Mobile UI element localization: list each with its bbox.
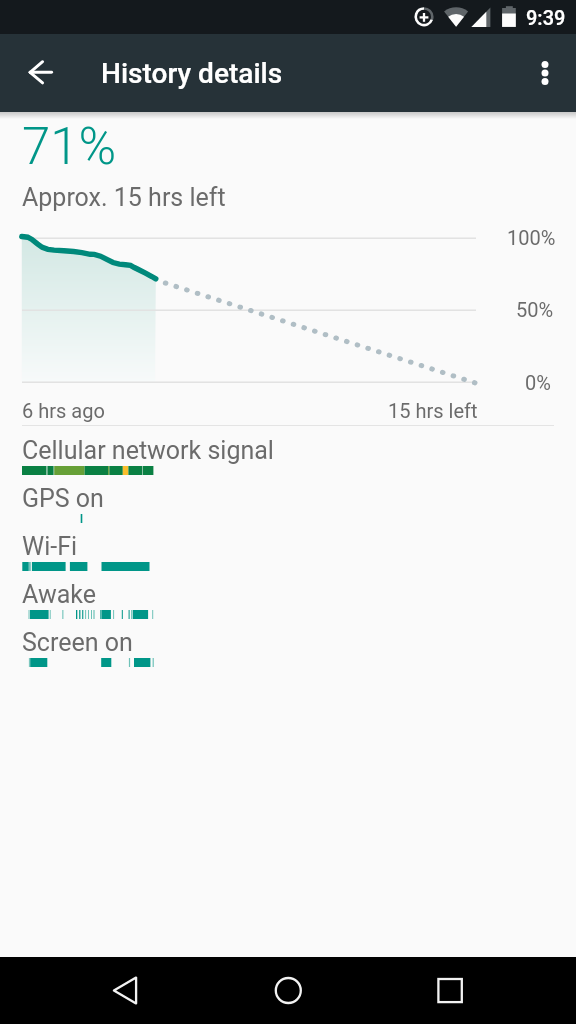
staticText: Awake: [22, 580, 96, 609]
staticText: 100%: [507, 226, 556, 249]
staticText: Cellular network signal: [22, 436, 274, 465]
button[interactable]: Screen on: [0, 628, 576, 676]
button[interactable]: Cellular network signal: [0, 436, 576, 484]
staticText: Approx. 15 hrs left: [22, 183, 226, 212]
staticText: Screen on: [22, 628, 133, 657]
button[interactable]: More options: [523, 51, 567, 95]
staticText: 50%: [516, 298, 554, 321]
staticText: History details: [101, 57, 283, 90]
button[interactable]: Wi-Fi: [0, 532, 576, 580]
button[interactable]: GPS on: [0, 484, 576, 532]
button[interactable]: Awake: [0, 580, 576, 628]
staticText: Wi-Fi: [22, 532, 78, 561]
button[interactable]: Back: [101, 966, 149, 1014]
staticText: 0%: [525, 371, 551, 394]
button[interactable]: Home: [264, 966, 312, 1014]
button[interactable]: Recents: [426, 966, 474, 1014]
staticText: GPS on: [22, 484, 104, 513]
button[interactable]: Navigate up: [18, 51, 62, 95]
staticText: 71%: [22, 117, 117, 177]
staticText: 6 hrs ago: [22, 399, 105, 422]
staticText: 15 hrs left: [388, 399, 478, 422]
staticText: 9:39: [526, 6, 566, 29]
